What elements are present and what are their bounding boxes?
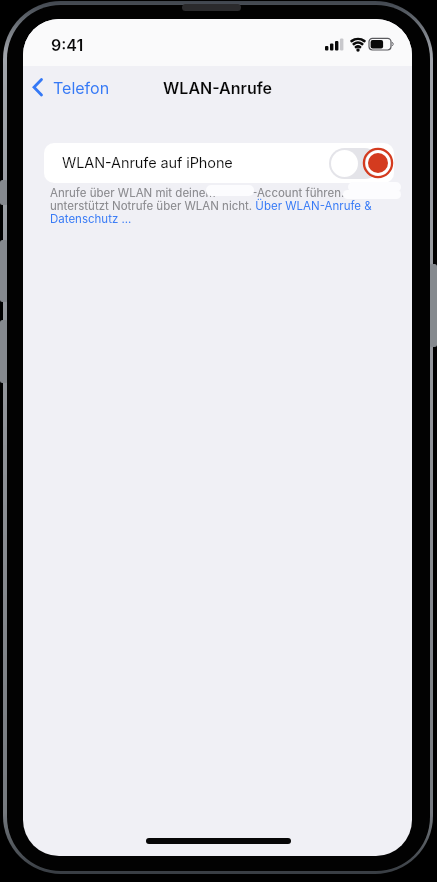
button[interactable] [329, 148, 380, 179]
button[interactable]: Telefon [29, 75, 110, 99]
staticText: -Account führen. [252, 186, 345, 200]
staticText: WLAN-Anrufe auf iPhone [62, 154, 233, 172]
button[interactable]: unterstützt Notrufe über WLAN nicht. Übe… [50, 199, 372, 213]
staticText: WLAN-Anrufe [23, 78, 412, 97]
staticText: Anrufe über WLAN mit deinem [50, 186, 216, 200]
button[interactable]: WLAN-Anrufe auf iPhone [44, 143, 394, 183]
button[interactable]: Datenschutz ... [50, 212, 132, 226]
staticText: 9:41 [51, 35, 84, 54]
staticText: Telefon [53, 78, 110, 97]
